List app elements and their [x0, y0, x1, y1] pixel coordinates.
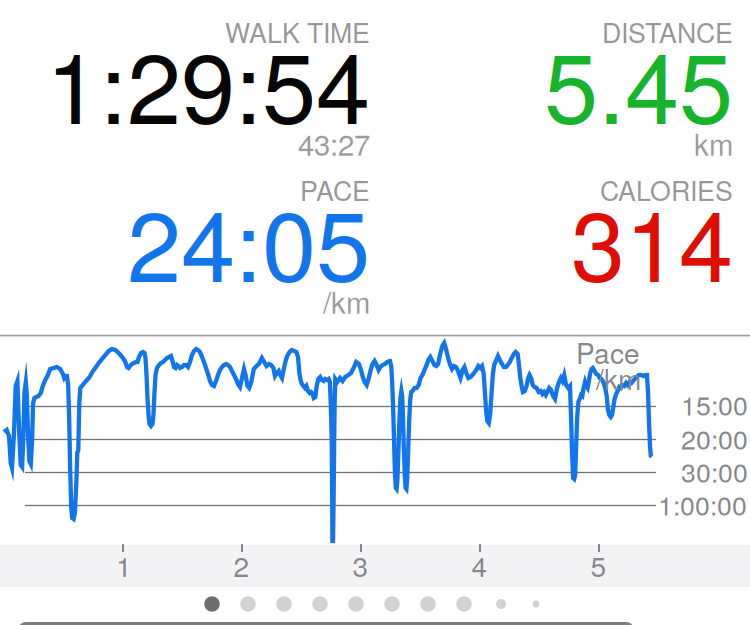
button[interactable]: Page 3	[267, 590, 301, 618]
staticText: km	[694, 122, 733, 164]
staticText: /km	[596, 358, 641, 398]
staticText: 24:05	[127, 170, 370, 310]
button[interactable]: Page 4	[303, 590, 337, 618]
staticText: 5.45	[544, 12, 733, 152]
button[interactable]: Page 1	[195, 590, 229, 618]
staticText: 314	[571, 170, 733, 310]
button[interactable]: Page 9	[484, 590, 518, 618]
button[interactable]: Page 5	[339, 590, 373, 618]
staticText: PACE	[300, 170, 370, 209]
staticText: 30:00	[681, 452, 748, 490]
staticText: Pace	[576, 332, 640, 372]
staticText: 5	[590, 545, 606, 585]
staticText: WALK TIME	[225, 12, 370, 51]
staticText: 15:00	[681, 385, 748, 423]
staticText: 4	[471, 545, 487, 585]
button[interactable]: Pace	[0, 158, 375, 316]
button[interactable]: Calories	[375, 158, 750, 316]
staticText: DISTANCE	[602, 12, 733, 51]
staticText: 2	[233, 545, 249, 585]
button[interactable]: Page 2	[231, 590, 265, 618]
button[interactable]: Distance	[375, 0, 750, 158]
staticText: 1:00:00	[658, 485, 747, 523]
staticText: /km	[323, 280, 370, 322]
staticText: 1:29:54	[46, 12, 370, 152]
button[interactable]: Page 6	[375, 590, 409, 618]
staticText: 1	[116, 545, 132, 585]
button[interactable]: Page 8	[447, 590, 481, 618]
staticText: CALORIES	[600, 170, 733, 209]
button[interactable]: Page 7	[411, 590, 445, 618]
staticText: 20:00	[681, 419, 748, 457]
button[interactable]: Walk time	[0, 0, 375, 158]
button[interactable]: Page 10	[519, 590, 553, 618]
staticText: 3	[352, 545, 368, 585]
staticText: 43:27	[298, 122, 370, 164]
